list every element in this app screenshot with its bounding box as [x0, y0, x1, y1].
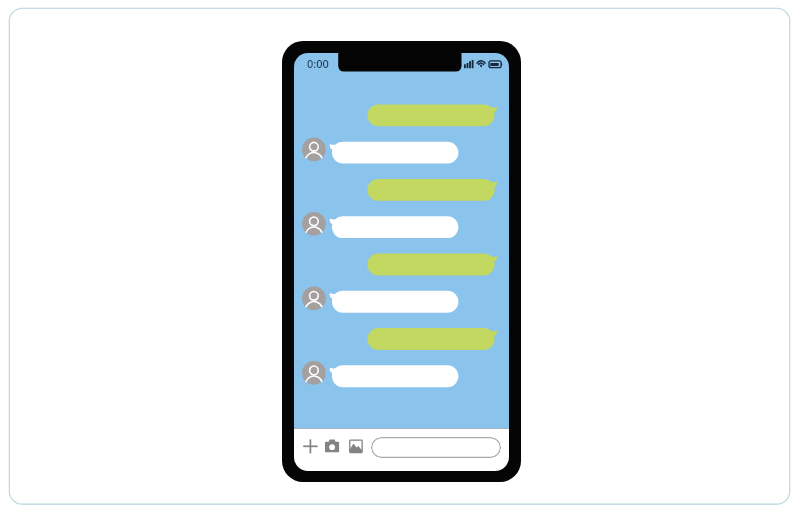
button[interactable]: Take photo [321, 429, 344, 465]
button[interactable]: Choose image [344, 429, 367, 465]
button[interactable]: Received message 1 [294, 135, 509, 169]
button[interactable]: Sent message 4 [294, 321, 509, 355]
button[interactable]: Sent message 1 [294, 97, 509, 131]
button[interactable]: Message input field [371, 437, 501, 458]
staticText: 0:00 [307, 56, 329, 71]
button[interactable]: Received message 3 [294, 284, 509, 318]
button[interactable]: Sent message 2 [294, 172, 509, 206]
button[interactable]: Received message 2 [294, 209, 509, 243]
button[interactable]: Add attachment [298, 429, 321, 465]
button[interactable]: Sent message 3 [294, 246, 509, 280]
button[interactable]: Received message 4 [294, 358, 509, 392]
